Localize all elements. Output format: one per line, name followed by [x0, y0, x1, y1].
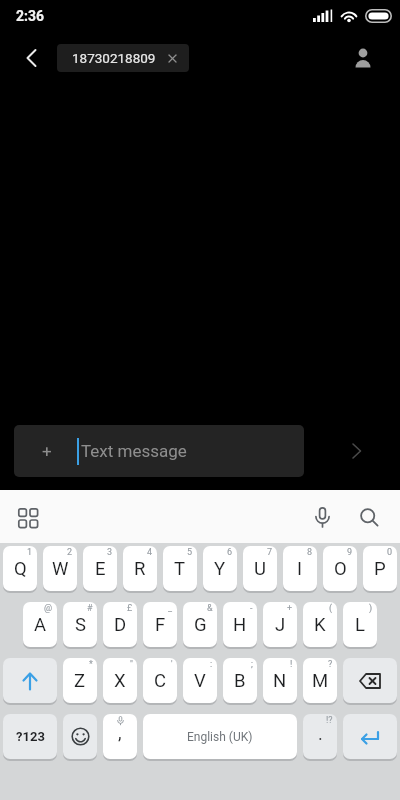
button[interactable]: + [263, 602, 297, 647]
staticText: ? [328, 659, 333, 670]
staticText: 1 [27, 547, 33, 558]
staticText: O [334, 558, 347, 580]
button[interactable]: 4 [123, 546, 157, 591]
staticText: . [318, 723, 323, 744]
button[interactable] [352, 500, 386, 534]
button[interactable]: _ [143, 602, 177, 647]
button[interactable]: " [103, 658, 137, 703]
button[interactable]: , [103, 714, 137, 759]
staticText: + [42, 441, 52, 461]
staticText: R [134, 558, 146, 580]
staticText: English (UK) [187, 730, 253, 744]
staticText: G [194, 614, 207, 636]
button[interactable]: 6 [203, 546, 237, 591]
button[interactable] [343, 714, 397, 759]
staticText: ' [171, 659, 173, 670]
staticText: ?123 [16, 729, 45, 744]
staticText: A [34, 614, 47, 636]
staticText: C [154, 670, 167, 692]
staticText: ) [369, 603, 373, 614]
staticText: 4 [147, 547, 153, 558]
staticText: N [273, 670, 287, 692]
staticText: H [233, 614, 247, 636]
button[interactable] [348, 43, 378, 73]
staticText: J [275, 614, 286, 636]
staticText: E [95, 558, 106, 580]
staticText: + [287, 603, 293, 614]
button[interactable]: 8 [283, 546, 317, 591]
staticText: Y [214, 558, 226, 580]
button[interactable] [305, 500, 339, 534]
button[interactable]: £ [103, 602, 137, 647]
staticText: 0 [387, 547, 393, 558]
staticText: ; [251, 659, 253, 670]
button[interactable]: - [223, 602, 257, 647]
staticText: U [254, 558, 266, 580]
button[interactable]: !? [303, 714, 337, 759]
staticText: Z [74, 670, 86, 692]
staticText: 5 [187, 547, 193, 558]
staticText: T [174, 558, 186, 580]
button[interactable]: 1 [3, 546, 37, 591]
staticText: 3 [107, 547, 113, 558]
staticText: F [155, 614, 166, 636]
button[interactable]: 2 [43, 546, 77, 591]
button[interactable]: @ [23, 602, 57, 647]
button[interactable]: ?123 [3, 714, 57, 759]
staticText: K [314, 614, 326, 636]
staticText: @ [44, 603, 53, 614]
button[interactable]: 7 [243, 546, 277, 591]
button[interactable]: ! [263, 658, 297, 703]
button[interactable]: ) [343, 602, 377, 647]
staticText: 7 [267, 547, 273, 558]
button[interactable]: : [183, 658, 217, 703]
staticText: X [114, 670, 126, 692]
button[interactable]: ( [303, 602, 337, 647]
staticText: W [52, 558, 69, 580]
button[interactable]: ? [303, 658, 337, 703]
button[interactable]: 3 [83, 546, 117, 591]
staticText: , [118, 722, 122, 743]
button[interactable] [3, 658, 57, 703]
staticText: £ [127, 603, 133, 614]
staticText: S [75, 614, 86, 636]
staticText: V [194, 670, 206, 692]
staticText: 6 [227, 547, 233, 558]
staticText: 18730218809 [72, 50, 156, 66]
button[interactable]: 5 [163, 546, 197, 591]
button[interactable] [14, 41, 48, 75]
staticText: D [114, 614, 127, 636]
button[interactable] [63, 714, 97, 759]
button[interactable]: English (UK) [143, 714, 297, 759]
staticText: Text message [81, 441, 187, 461]
staticText: # [87, 603, 93, 614]
staticText: 8 [307, 547, 313, 558]
staticText: 9 [347, 547, 353, 558]
staticText: - [250, 603, 253, 614]
button[interactable] [344, 438, 370, 464]
button[interactable]: # [63, 602, 97, 647]
staticText: ! [290, 659, 293, 670]
staticText: _ [168, 603, 173, 614]
staticText: P [374, 558, 386, 580]
staticText: " [130, 659, 133, 670]
staticText: * [89, 659, 93, 670]
button[interactable]: 0 [363, 546, 397, 591]
staticText: & [207, 603, 213, 614]
button[interactable]: 18730218809 [57, 44, 189, 72]
button[interactable] [10, 500, 44, 534]
button[interactable] [343, 658, 397, 703]
button[interactable]: + [14, 425, 304, 477]
button[interactable]: 9 [323, 546, 357, 591]
staticText: M [312, 670, 329, 692]
staticText: Q [14, 558, 27, 580]
staticText: B [234, 670, 246, 692]
button[interactable]: ; [223, 658, 257, 703]
button[interactable]: & [183, 602, 217, 647]
staticText: !? [326, 715, 333, 726]
staticText: L [355, 614, 365, 636]
button[interactable]: * [63, 658, 97, 703]
button[interactable]: ' [143, 658, 177, 703]
staticText: I [297, 558, 303, 580]
staticText: 2:36 [16, 8, 45, 24]
